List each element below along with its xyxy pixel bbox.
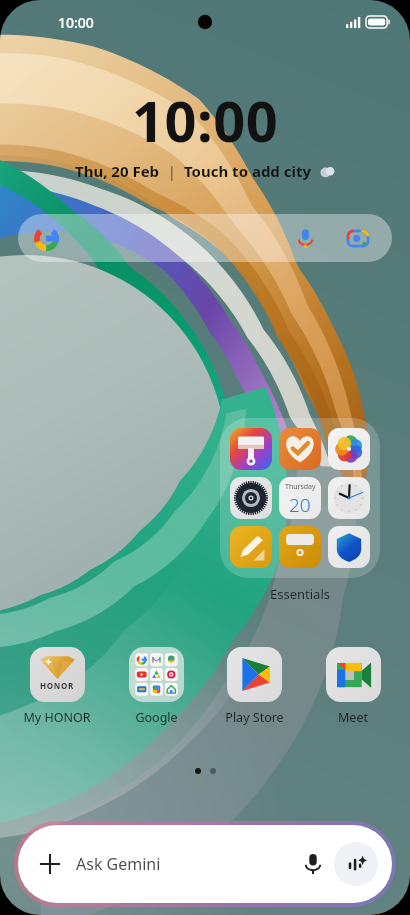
other: Google Search [34, 226, 59, 251]
button[interactable]: Security [328, 526, 370, 568]
staticText: Ask Gemini [76, 853, 161, 875]
staticText: 20 [289, 492, 311, 518]
button[interactable]: Theme [230, 428, 272, 470]
staticText: Play Store [225, 709, 284, 726]
button[interactable]: Play Store [212, 647, 296, 726]
button[interactable]: Gemini [334, 842, 378, 886]
other: Google Lens [346, 226, 370, 250]
staticText: Touch to add city [184, 161, 312, 181]
other: Voice input [302, 853, 324, 875]
button[interactable]: Toolbox [279, 526, 321, 568]
button[interactable]: Gallery [328, 428, 370, 470]
button[interactable]: Clock [328, 477, 370, 519]
button[interactable]: Theme [220, 418, 380, 578]
other: Voice search [295, 228, 316, 249]
button[interactable]: Health [279, 428, 321, 470]
button[interactable]: Settings [230, 477, 272, 519]
button[interactable]: Add [18, 825, 392, 903]
button[interactable]: 10:00 [0, 82, 410, 181]
staticText: Thu, 20 Feb [75, 161, 160, 181]
staticText: HONOR [40, 680, 75, 691]
button[interactable]: Notes [230, 526, 272, 568]
button[interactable]: HONOR [15, 647, 99, 726]
staticText: Meet [338, 709, 368, 726]
button[interactable]: Google [114, 647, 198, 726]
button[interactable]: Google Search [18, 214, 392, 262]
button[interactable]: Meet [311, 647, 395, 726]
staticText: Thursday [285, 482, 316, 492]
other: Add [38, 852, 62, 876]
staticText: | [160, 161, 184, 181]
button[interactable]: Thursday [279, 477, 321, 519]
staticText: Essentials [270, 585, 330, 603]
staticText: Google [135, 709, 178, 726]
staticText: 10:00 [132, 82, 279, 158]
staticText: My HONOR [23, 709, 91, 726]
staticText: 10:00 [58, 13, 94, 32]
